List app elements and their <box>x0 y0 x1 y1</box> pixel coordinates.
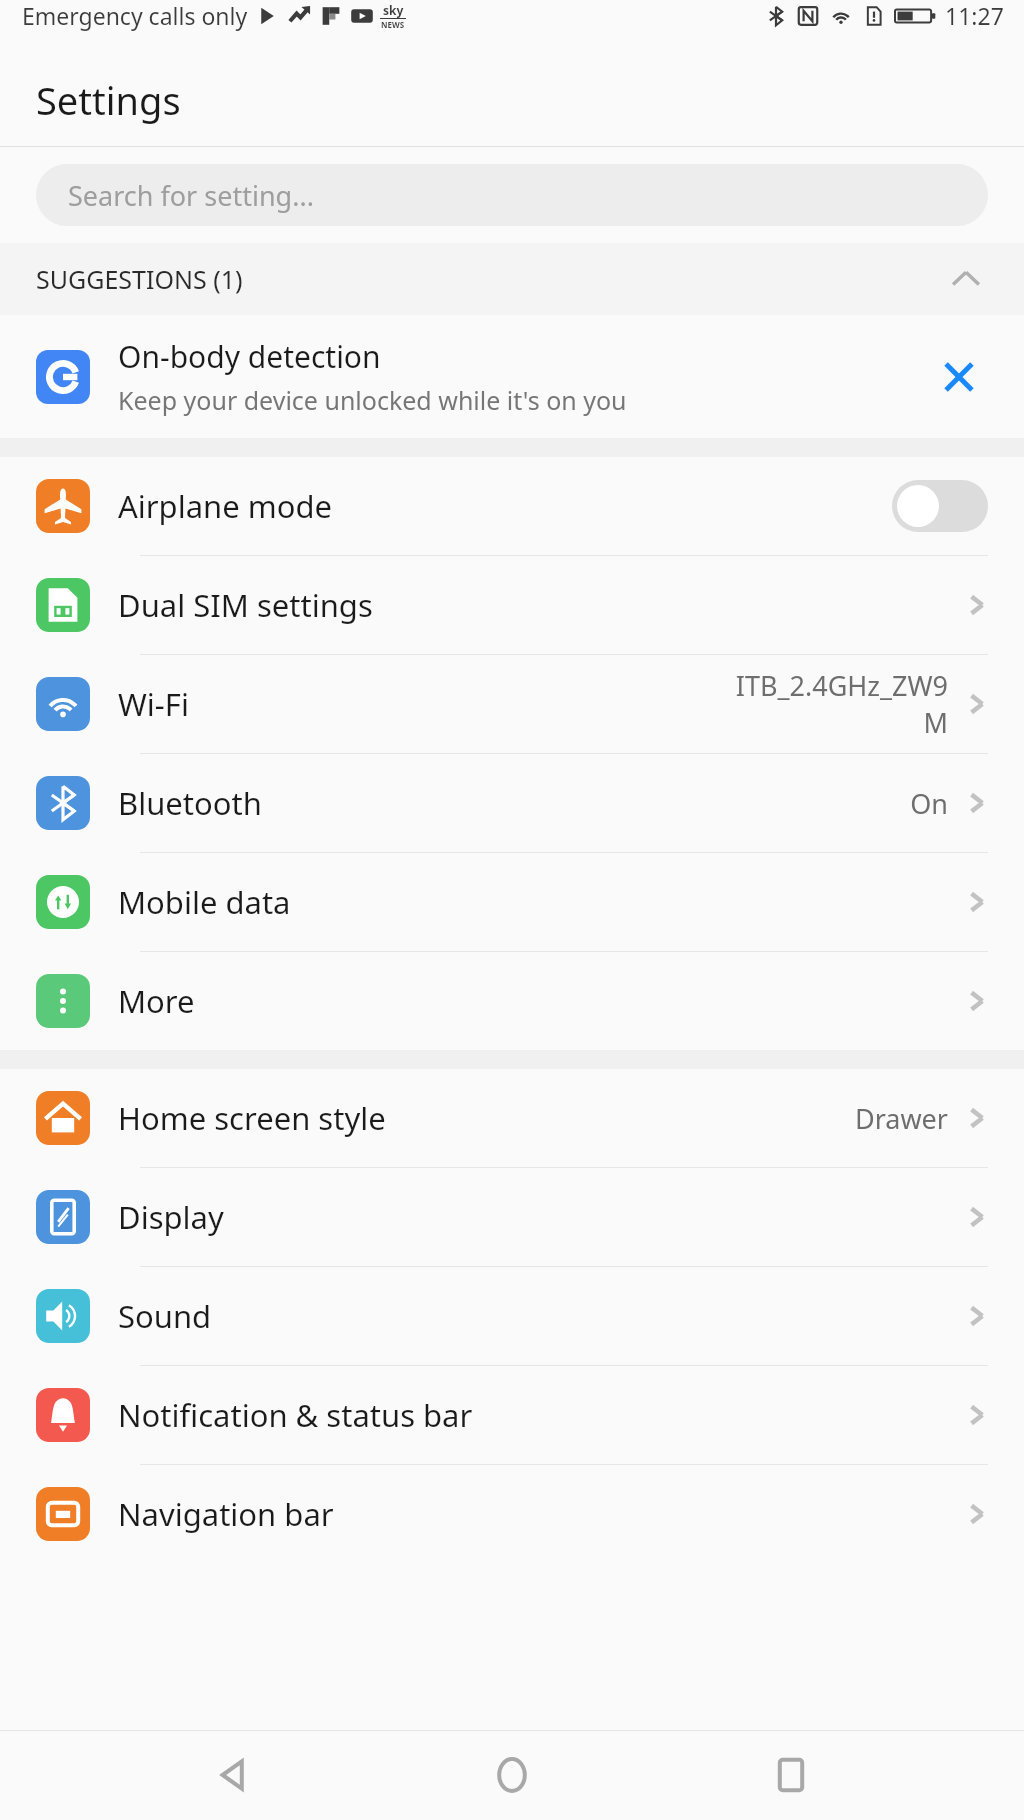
button[interactable]: On-body detection <box>0 315 1024 438</box>
button[interactable]: Display <box>0 1168 1024 1266</box>
button[interactable]: Search for setting... <box>36 164 988 226</box>
button[interactable]: Home <box>466 1730 558 1820</box>
staticText: Settings <box>36 74 181 126</box>
staticText: Home screen style <box>118 1097 386 1139</box>
button[interactable]: Sound <box>0 1267 1024 1365</box>
staticText: Emergency calls only <box>22 0 248 31</box>
staticText: sky <box>383 2 404 18</box>
staticText: On <box>910 785 948 822</box>
button[interactable]: Bluetooth <box>0 754 1024 852</box>
button[interactable]: Navigation bar <box>0 1465 1024 1563</box>
staticText: More <box>118 980 195 1022</box>
staticText: Search for setting... <box>68 177 314 214</box>
staticText: Keep your device unlocked while it's on … <box>118 383 627 417</box>
button[interactable]: Collapse suggestions <box>944 257 988 301</box>
button[interactable]: Home screen style <box>0 1069 1024 1167</box>
button[interactable]: Airplane mode <box>0 457 1024 555</box>
button[interactable]: More <box>0 952 1024 1050</box>
staticText: SUGGESTIONS (1) <box>36 262 243 296</box>
staticText: Drawer <box>854 1100 948 1137</box>
button[interactable]: Back <box>187 1730 279 1820</box>
button[interactable]: Dismiss suggestion <box>924 342 994 412</box>
button[interactable]: Recent apps <box>745 1730 837 1820</box>
staticText: Sound <box>118 1295 212 1337</box>
button[interactable] <box>892 480 988 532</box>
staticText: ITB_2.4GHz_ZW9 M <box>735 667 948 741</box>
staticText: Dual SIM settings <box>118 584 373 626</box>
staticText: 11:27 <box>945 0 1004 31</box>
staticText: NEWS <box>381 19 405 30</box>
staticText: Bluetooth <box>118 782 262 824</box>
staticText: Wi-Fi <box>118 683 189 725</box>
staticText: Mobile data <box>118 881 291 923</box>
staticText: Airplane mode <box>118 485 333 527</box>
button[interactable]: Wi-Fi <box>0 655 1024 753</box>
button[interactable]: Dual SIM settings <box>0 556 1024 654</box>
staticText: Display <box>118 1196 224 1238</box>
button[interactable]: Notification & status bar <box>0 1366 1024 1464</box>
staticText: Navigation bar <box>118 1493 334 1535</box>
staticText: Notification & status bar <box>118 1394 473 1436</box>
button[interactable]: Mobile data <box>0 853 1024 951</box>
staticText: On-body detection <box>118 336 381 377</box>
